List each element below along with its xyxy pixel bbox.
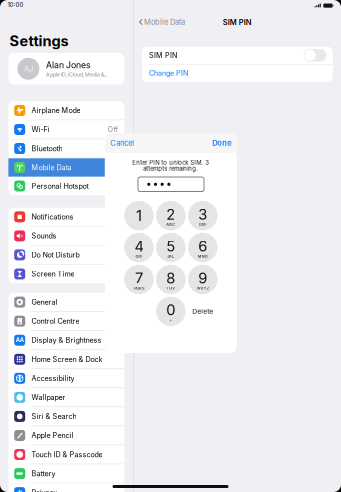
button[interactable]: Notifications — [8, 208, 124, 226]
staticText: AJ — [24, 64, 33, 73]
button[interactable]: 8 — [156, 265, 186, 294]
staticText: GHI — [135, 254, 142, 259]
button[interactable]: Siri & Search — [8, 407, 124, 426]
staticText: 6 — [198, 237, 207, 255]
button[interactable]: Battery — [8, 464, 124, 483]
staticText: Delete — [192, 307, 213, 315]
staticText: Settings — [9, 32, 68, 50]
staticText: Notifications — [31, 212, 73, 221]
button[interactable]: Done — [191, 133, 237, 153]
button[interactable]: Airplane Mode — [8, 101, 124, 120]
staticText: Accessibility — [31, 374, 74, 383]
staticText: Bluetooth — [31, 144, 62, 153]
staticText: 3 — [198, 205, 207, 223]
staticText: ABC — [166, 222, 175, 227]
staticText: SIM PIN — [223, 18, 252, 27]
button[interactable]: 3 — [188, 201, 217, 230]
button[interactable]: Sounds — [8, 227, 124, 245]
button[interactable]: Cancel — [105, 133, 150, 153]
staticText: 7 — [135, 269, 143, 287]
button[interactable]: AJ — [8, 53, 124, 84]
button[interactable]: General — [8, 293, 124, 311]
button[interactable]: Mobile Data — [8, 158, 124, 177]
staticText: + — [169, 318, 172, 322]
button[interactable]: 0 — [156, 297, 186, 326]
staticText: Apple Pencil — [31, 431, 73, 440]
staticText: Display & Brightness — [31, 336, 101, 345]
staticText: 9 — [198, 269, 207, 287]
button[interactable]: Privacy — [8, 483, 124, 492]
staticText: Siri & Search — [31, 412, 76, 421]
staticText: Wi-Fi — [31, 125, 49, 134]
button[interactable]: Change PIN — [142, 65, 333, 82]
staticText: Airplane Mode — [31, 106, 80, 115]
button[interactable]: 5 — [156, 233, 186, 262]
staticText: Do Not Disturb — [31, 251, 79, 259]
staticText: 4 — [134, 237, 143, 255]
staticText: Home Screen & Dock — [31, 355, 102, 364]
staticText: AA — [16, 337, 24, 344]
staticText: TUV — [166, 286, 175, 290]
staticText: Apple ID, iCloud, Media &... — [46, 71, 107, 78]
button[interactable]: 9 — [188, 265, 217, 294]
staticText: JKL — [167, 254, 174, 259]
staticText: Change PIN — [149, 69, 188, 78]
staticText: Screen Time — [31, 270, 74, 278]
staticText: PQRS — [134, 286, 144, 290]
staticText: 5 — [166, 237, 175, 255]
staticText: Alan Jones — [46, 60, 91, 70]
button[interactable]: Screen Time — [8, 265, 124, 283]
staticText: 8 — [166, 269, 175, 287]
button[interactable]: 6 — [188, 233, 217, 262]
staticText: MNO — [198, 254, 208, 259]
staticText: attempts remaining. — [143, 165, 198, 172]
staticText: 10:00 — [7, 1, 23, 8]
button[interactable]: Accessibility — [8, 369, 124, 387]
button[interactable]: Personal Hotspot — [8, 177, 124, 195]
button[interactable]: 1 — [124, 201, 154, 230]
staticText: Battery — [31, 469, 55, 478]
staticText: Sounds — [31, 231, 56, 240]
staticText: 0 — [166, 301, 175, 319]
button[interactable]: 7 — [124, 265, 154, 294]
button[interactable]: AA — [8, 331, 124, 349]
button[interactable]: 2 — [156, 201, 186, 230]
staticText: Privacy — [31, 488, 57, 492]
staticText: Off — [107, 125, 118, 134]
staticText: Mobile Data — [144, 17, 185, 26]
staticText: 2 — [166, 205, 175, 223]
staticText: 1 — [136, 207, 142, 224]
button[interactable]: Control Centre — [8, 312, 124, 330]
button[interactable]: Do Not Disturb — [8, 246, 124, 264]
staticText: Control Centre — [31, 317, 79, 325]
button[interactable]: Apple Pencil — [8, 426, 124, 445]
staticText: Touch ID & Passcode — [31, 450, 102, 459]
button[interactable]: Wallpaper — [8, 388, 124, 406]
button[interactable]: Mobile Data — [139, 17, 185, 26]
button[interactable]: Wi-Fi — [8, 120, 124, 139]
staticText: Done — [212, 138, 231, 148]
button[interactable]: Home Screen & Dock — [8, 350, 124, 368]
button[interactable]: Bluetooth — [8, 139, 124, 158]
staticText: Cancel — [110, 138, 134, 148]
staticText: Personal Hotspot — [31, 182, 88, 190]
staticText: SIM PIN — [149, 51, 177, 60]
staticText: Mobile Data — [31, 163, 71, 172]
staticText: Enter PIN to unlock SIM. 3 — [132, 159, 209, 166]
button[interactable]: Touch ID & Passcode — [8, 445, 124, 464]
button[interactable]: 4 — [124, 233, 154, 262]
button[interactable]: Delete — [188, 297, 217, 326]
staticText: WXYZ — [197, 286, 209, 290]
staticText: General — [31, 298, 57, 306]
staticText: DEF — [199, 222, 206, 227]
staticText: Wallpaper — [31, 393, 65, 402]
